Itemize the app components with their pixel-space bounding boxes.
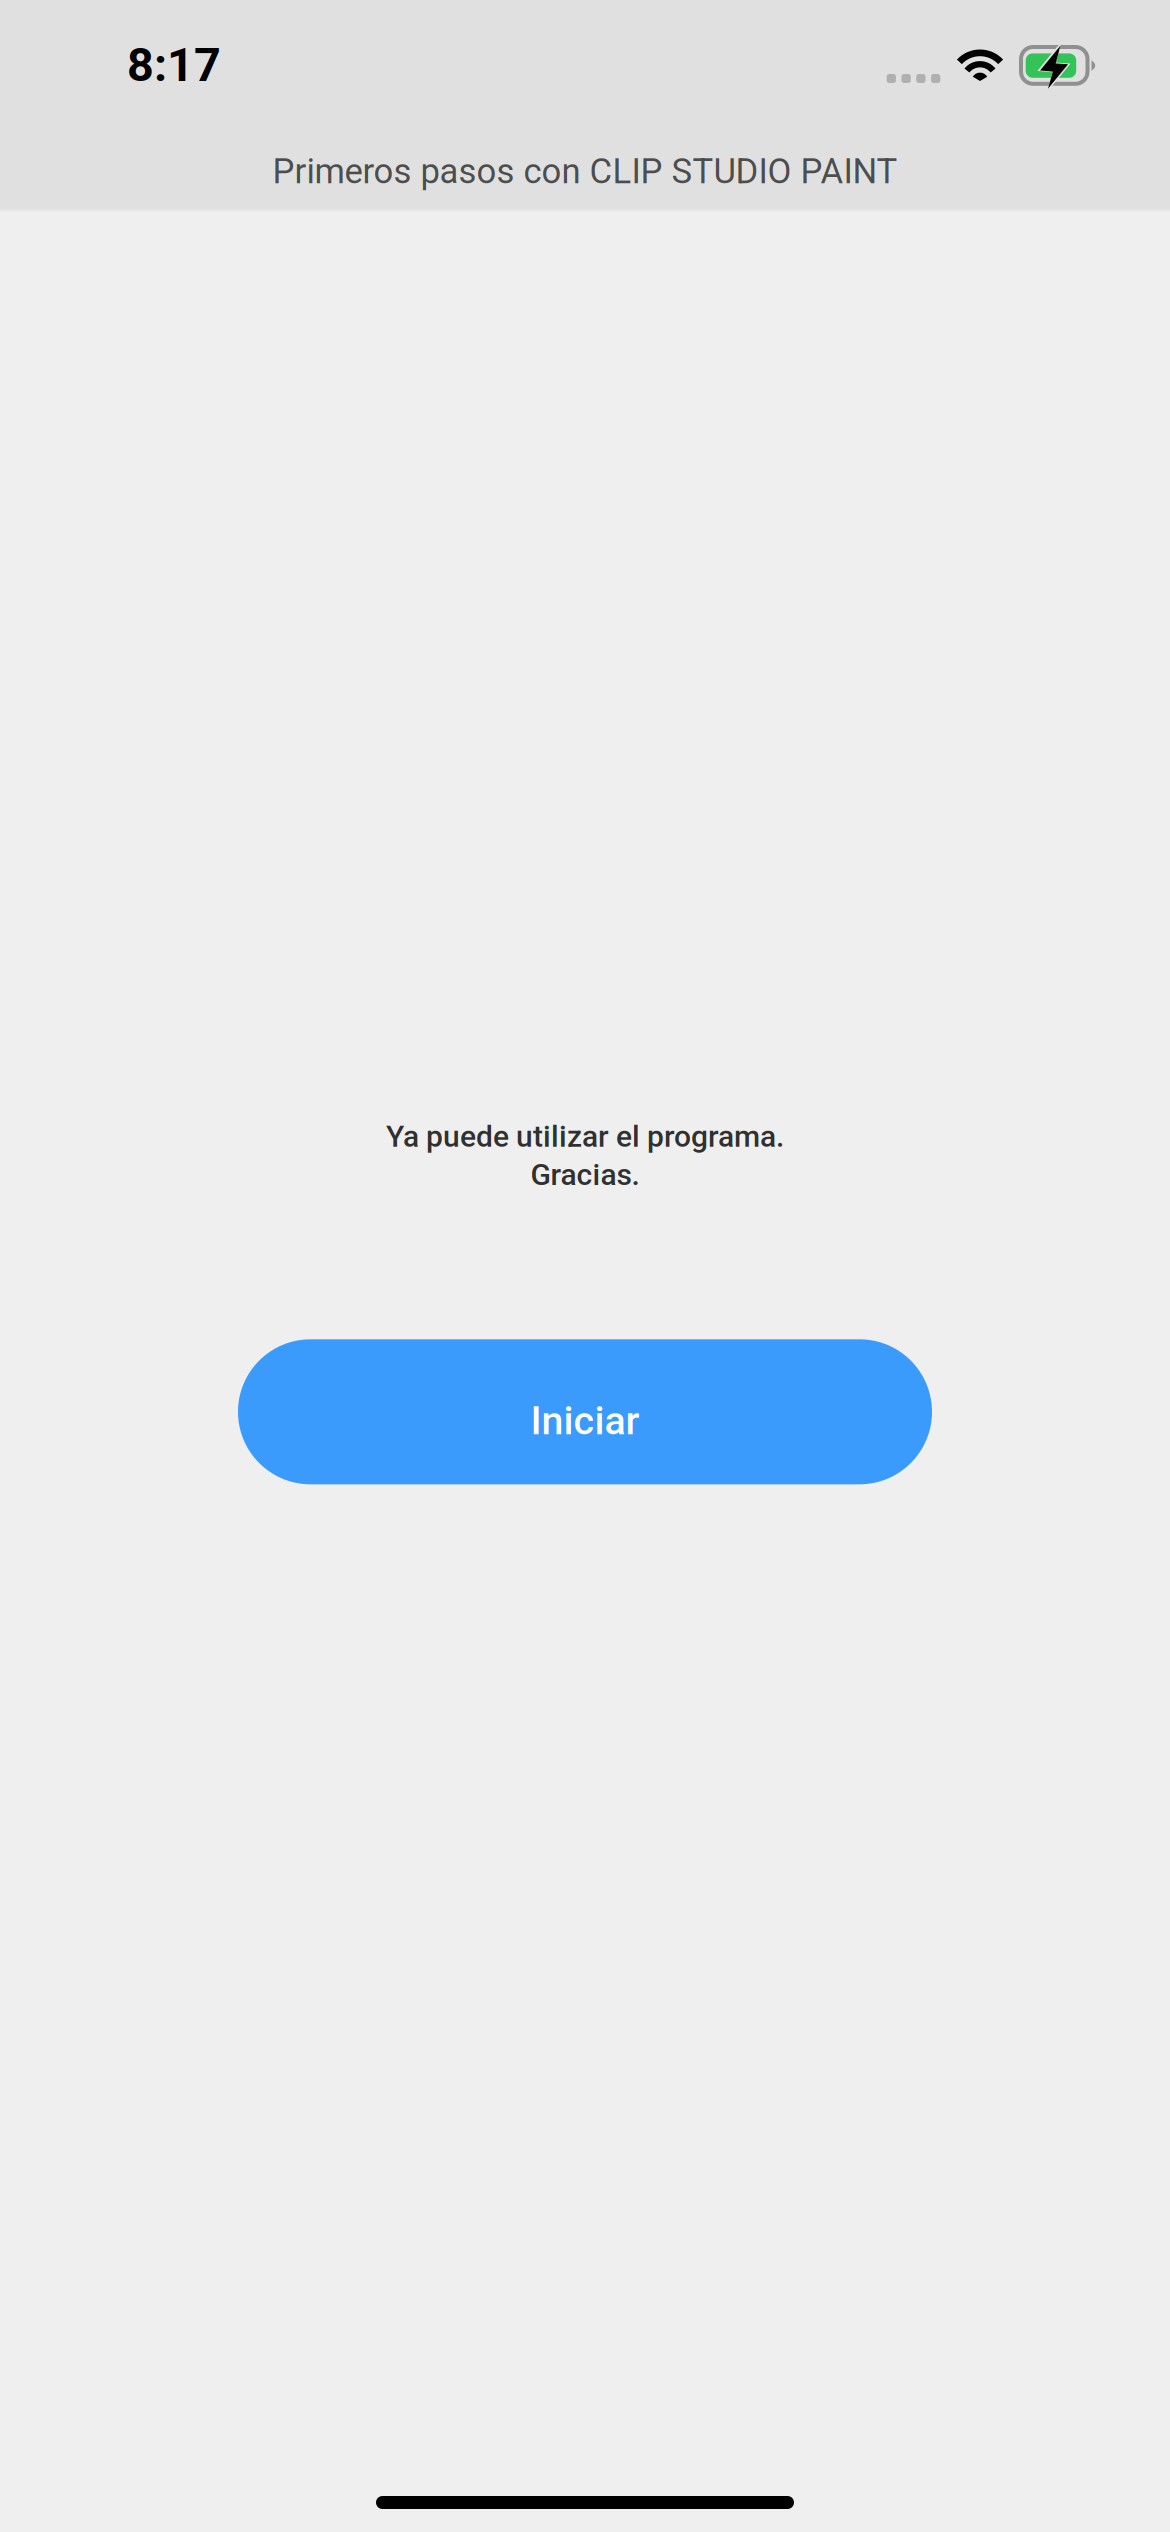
staticText: Primeros pasos con CLIP STUDIO PAINT (272, 151, 897, 192)
staticText: Gracias. (530, 1157, 639, 1192)
button[interactable]: Primeros pasos con CLIP STUDIO PAINT (0, 110, 1170, 209)
button[interactable]: Iniciar (238, 1339, 932, 1484)
staticText: 8:17 (127, 38, 221, 92)
staticText: Ya puede utilizar el programa. (386, 1119, 784, 1154)
staticText: Iniciar (530, 1398, 639, 1444)
